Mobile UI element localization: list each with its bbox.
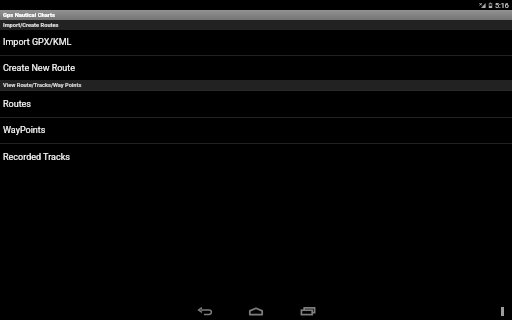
staticText: WayPoints	[3, 125, 46, 136]
staticText: Import/Create Routes	[3, 22, 59, 29]
button[interactable]: Routes	[0, 91, 512, 117]
staticText: Recorded Tracks	[3, 152, 70, 163]
button[interactable]: Recorded Tracks	[0, 144, 512, 170]
button[interactable]: Home	[246, 302, 266, 320]
button[interactable]: Import GPX/KML	[0, 30, 512, 55]
staticText: Routes	[3, 99, 32, 110]
other: Mobile signal	[479, 2, 486, 9]
staticText: 5:16	[495, 1, 509, 9]
button[interactable]: WayPoints	[0, 118, 512, 143]
button[interactable]: Back	[195, 302, 215, 320]
other: Battery	[488, 2, 493, 9]
button[interactable]: More options	[493, 302, 511, 320]
button[interactable]: Create New Route	[0, 56, 512, 80]
staticText: View Route/Tracks/Way Points	[3, 82, 82, 89]
staticText: Gps Nautical Charts	[3, 12, 56, 19]
staticText: Import GPX/KML	[3, 37, 72, 48]
staticText: Create New Route	[3, 63, 75, 74]
button[interactable]: Recent apps	[297, 302, 317, 320]
button[interactable]: Gps Nautical Charts	[0, 10, 512, 20]
